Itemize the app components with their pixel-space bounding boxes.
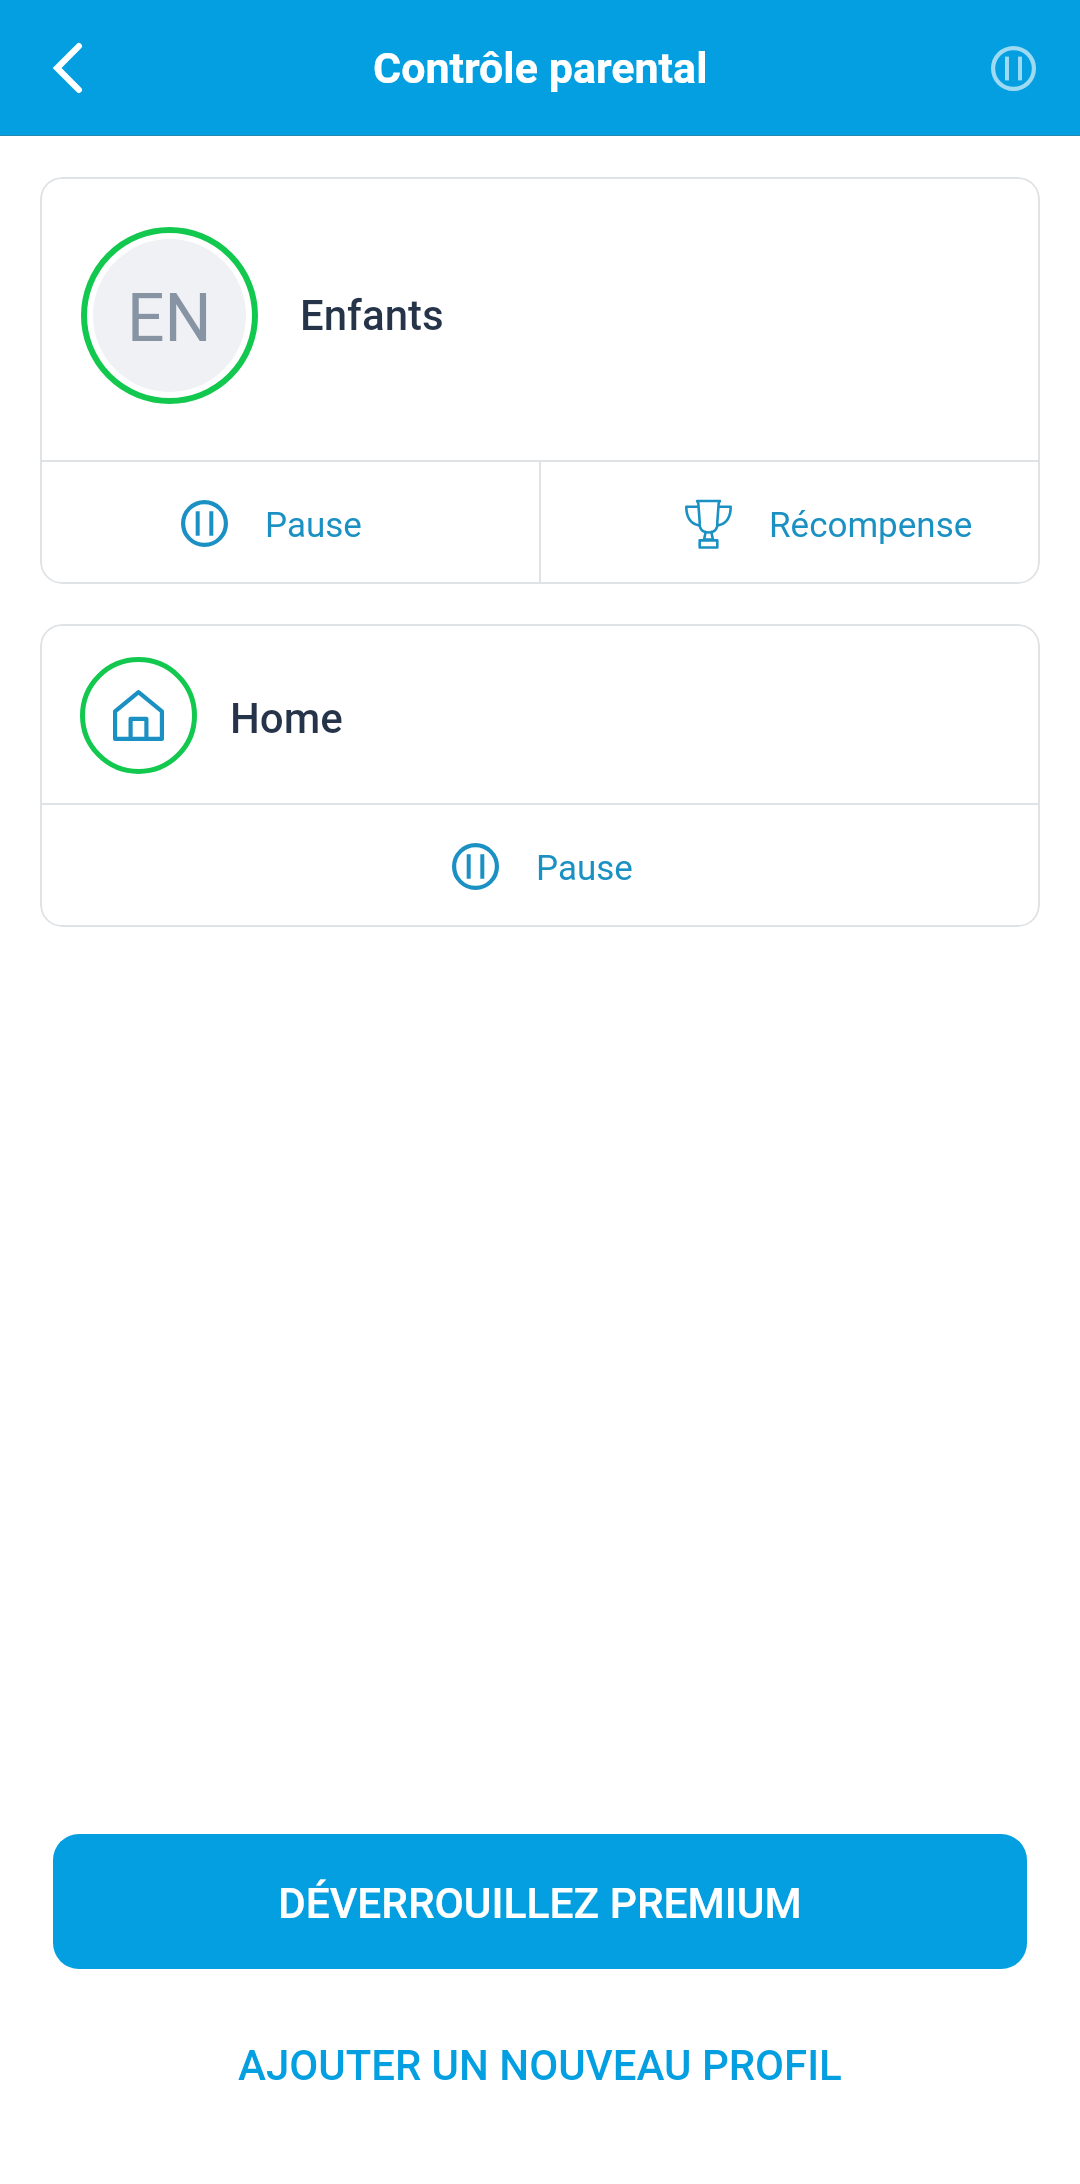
button[interactable]: EN (40, 177, 1040, 460)
button[interactable]: AJOUTER UN NOUVEAU PROFIL (0, 1969, 1080, 2161)
staticText: Home (230, 694, 343, 743)
staticText: EN (127, 280, 212, 357)
button[interactable]: Home (40, 624, 1040, 803)
staticText: AJOUTER UN NOUVEAU PROFIL (238, 2041, 842, 2090)
staticText: DÉVERROUILLEZ PREMIUM (278, 1879, 802, 1929)
button[interactable]: Pause (40, 805, 1040, 927)
button[interactable]: Récompense (541, 462, 1040, 584)
button[interactable]: DÉVERROUILLEZ PREMIUM (53, 1834, 1027, 1969)
button[interactable]: Pause (40, 462, 539, 584)
staticText: Récompense (769, 505, 973, 546)
staticText: Enfants (300, 291, 444, 340)
button[interactable]: Back (18, 18, 118, 118)
staticText: Pause (265, 505, 362, 546)
staticText: Contrôle parental (373, 43, 708, 93)
staticText: Pause (536, 848, 633, 889)
button[interactable]: Pause all profiles (968, 23, 1058, 113)
